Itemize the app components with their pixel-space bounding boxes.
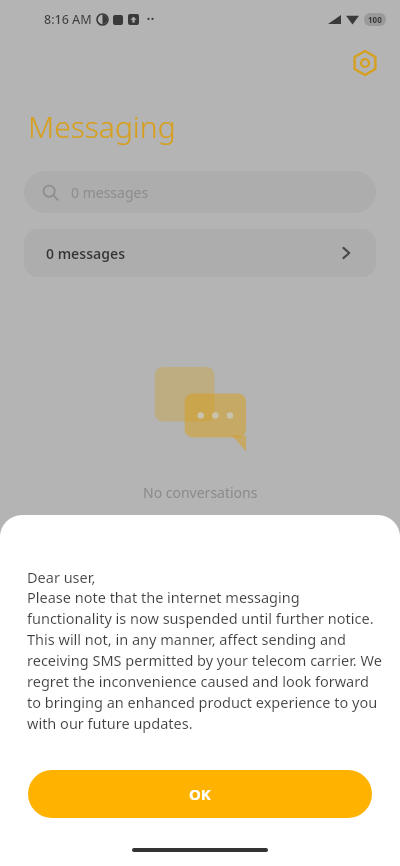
button[interactable]: 0 messages bbox=[24, 229, 376, 277]
staticText: OK bbox=[189, 784, 211, 804]
button[interactable]: Settings bbox=[348, 46, 382, 80]
staticText: 0 messages bbox=[71, 183, 149, 202]
button[interactable]: OK bbox=[28, 770, 372, 818]
staticText: Messaging bbox=[28, 106, 176, 147]
staticText: No conversations bbox=[143, 483, 258, 502]
staticText: 8:16 AM bbox=[44, 11, 92, 28]
staticText: 100 bbox=[368, 14, 382, 25]
button[interactable]: 0 messages bbox=[24, 171, 376, 213]
staticText: 0 messages bbox=[46, 244, 126, 263]
staticText: Dear user, Please note that the internet… bbox=[27, 567, 382, 734]
